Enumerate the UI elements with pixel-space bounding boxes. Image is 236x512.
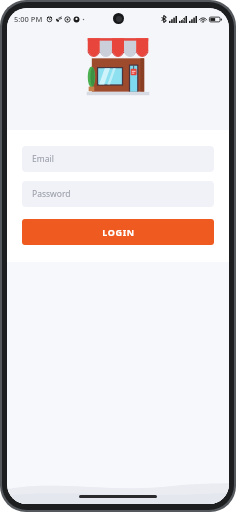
staticText: 5:00 PM (14, 14, 43, 24)
other: Store logo (84, 36, 152, 98)
button[interactable]: LOGIN (22, 219, 214, 245)
staticText: Email (32, 153, 54, 165)
button[interactable]: Email (22, 146, 214, 172)
button[interactable]: Password (22, 181, 214, 207)
staticText: LOGIN (102, 226, 135, 238)
staticText: Password (32, 188, 71, 200)
